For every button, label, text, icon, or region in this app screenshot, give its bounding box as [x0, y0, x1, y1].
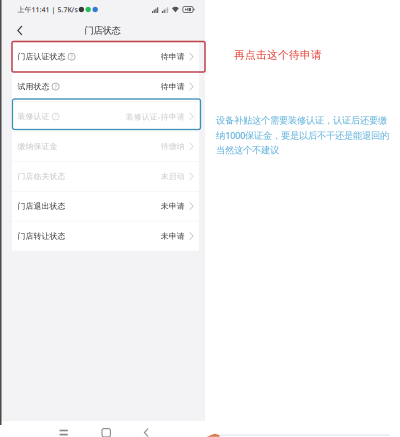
staticText: 未申请 — [161, 231, 185, 241]
staticText: 纳1000保证金，要是以后不干还是能退回的 — [216, 129, 389, 141]
staticText: 未启动 — [161, 171, 185, 181]
staticText: 门店状态 — [84, 25, 120, 36]
staticText: 门店认证状态 — [17, 52, 65, 62]
staticText: 待申请 — [161, 82, 185, 91]
button[interactable]: Back — [9, 19, 31, 42]
button[interactable]: Back — [140, 425, 153, 437]
staticText: ? — [71, 53, 73, 60]
staticText: 试用状态 — [17, 82, 49, 91]
staticText: 上午11:41 | 5.7K/s — [17, 5, 77, 14]
staticText: 待申请 — [161, 52, 185, 62]
staticText: 门店转让状态 — [17, 231, 65, 241]
staticText: ? — [55, 113, 57, 120]
staticText: 缴纳保证金 — [17, 141, 57, 151]
staticText: 门店临关状态 — [17, 171, 65, 181]
staticText: 未申请 — [161, 201, 185, 211]
staticText: 当然这个不建议 — [216, 144, 279, 156]
staticText: 装修认证 — [17, 111, 49, 121]
staticText: 设备补贴这个需要装修认证，认证后还要缴 — [216, 115, 387, 126]
button[interactable]: 试用状态 — [12, 72, 199, 101]
staticText: 再点击这个待申请 — [234, 48, 322, 62]
staticText: 待缴纳 — [161, 141, 185, 151]
staticText: ? — [55, 83, 57, 90]
button[interactable]: 门店临关状态 — [12, 162, 199, 191]
button[interactable]: Home — [98, 425, 114, 437]
staticText: 门店退出状态 — [17, 201, 65, 211]
button[interactable]: Recents — [55, 426, 72, 437]
button[interactable]: 门店认证状态 — [12, 42, 199, 71]
staticText: 装修认证-待申请 — [126, 111, 185, 122]
button[interactable]: 门店退出状态 — [12, 191, 199, 221]
button[interactable]: 装修认证 — [12, 102, 199, 131]
button[interactable]: 门店转让状态 — [12, 221, 199, 251]
button[interactable]: 缴纳保证金 — [12, 132, 199, 161]
